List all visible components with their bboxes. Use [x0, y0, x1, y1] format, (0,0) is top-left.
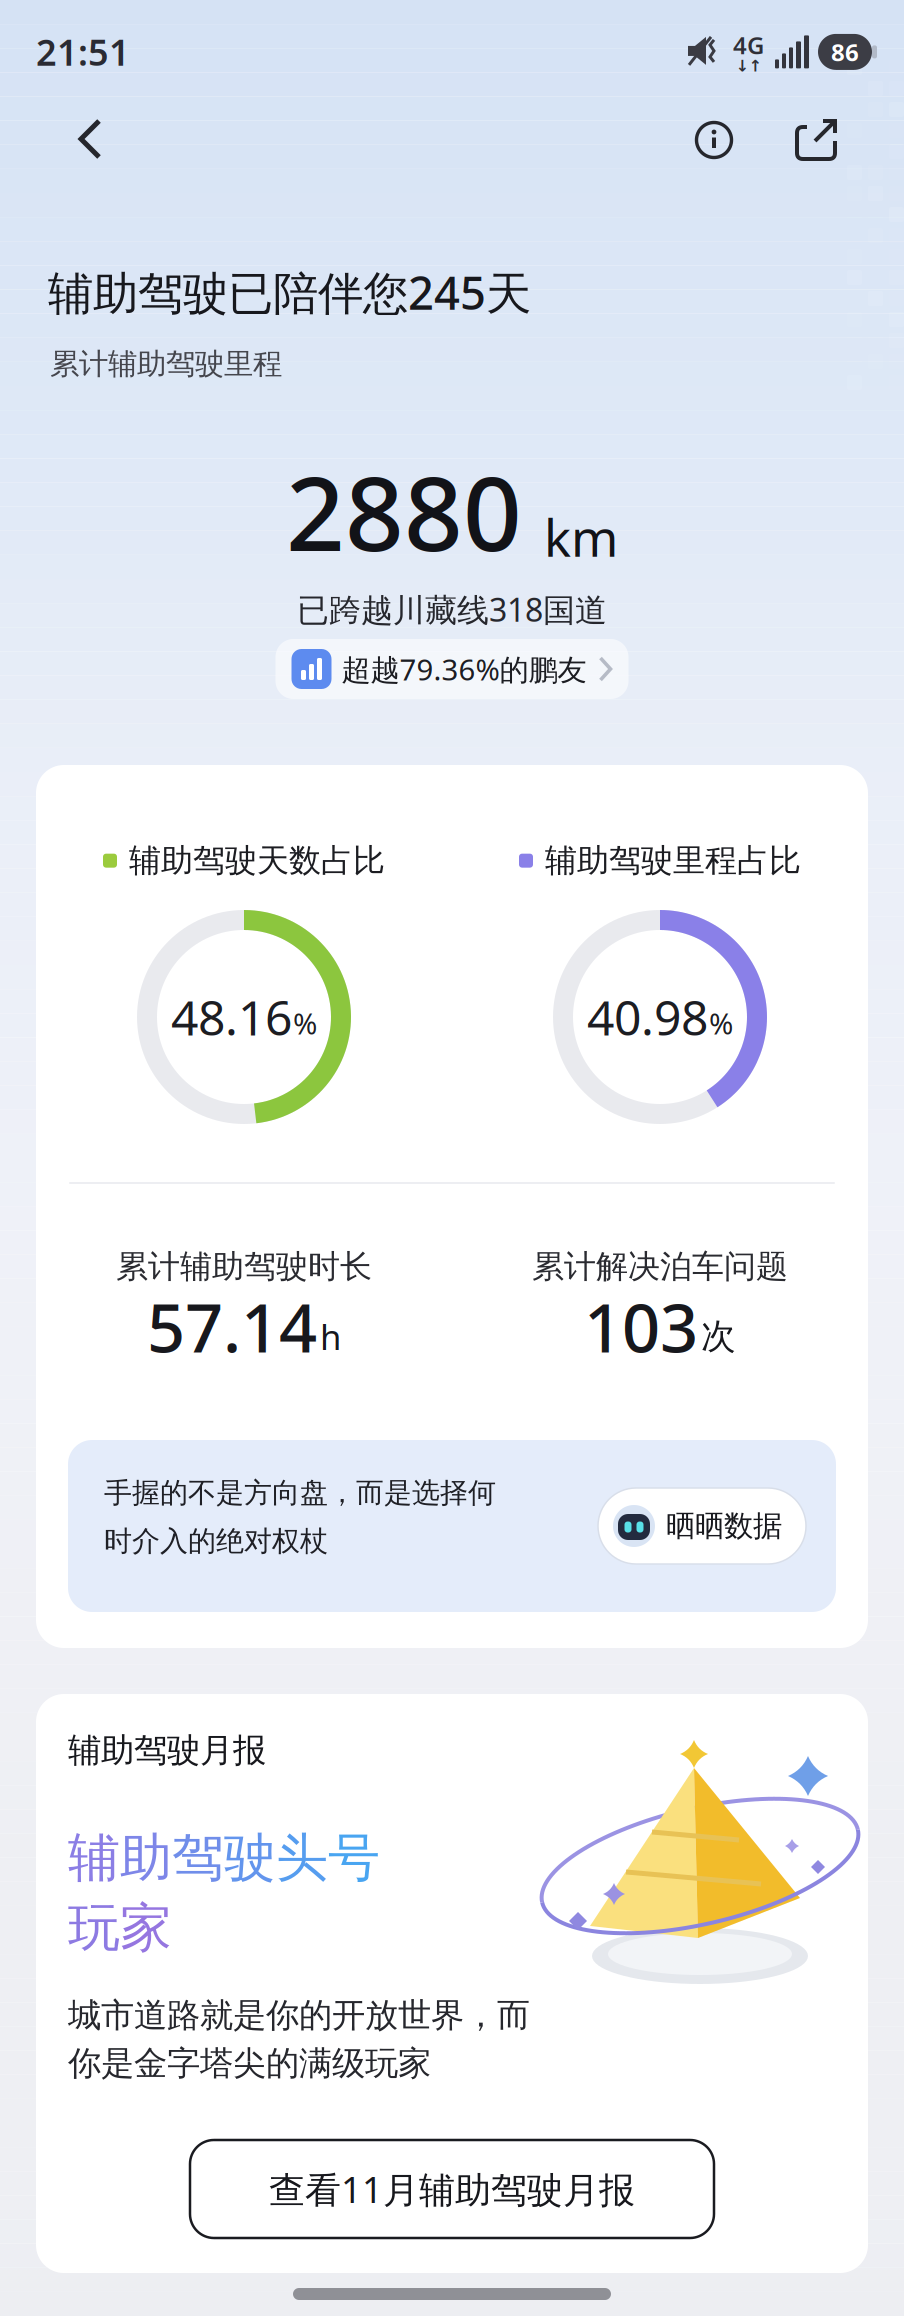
staticText: 86	[831, 36, 859, 68]
staticText: %	[709, 1003, 733, 1042]
staticText: 辅助驾驶月报	[68, 1730, 266, 1771]
staticText: 48.16	[171, 985, 292, 1049]
staticText: 你是金字塔尖的满级玩家	[68, 2043, 431, 2084]
button[interactable]: Share	[794, 118, 838, 162]
staticText: 4G	[733, 29, 764, 61]
staticText: 手握的不是方向盘，而是选择何	[104, 1476, 496, 1510]
button[interactable]: 查看11月辅助驾驶月报	[190, 2140, 714, 2238]
staticText: 超越79.36%的鹏友	[341, 649, 586, 688]
staticText: 时介入的绝对权杖	[104, 1524, 328, 1558]
staticText: 辅助驾驶天数占比	[129, 841, 385, 880]
staticText: 已跨越川藏线318国道	[297, 588, 607, 630]
staticText: 查看11月辅助驾驶月报	[269, 2165, 635, 2213]
staticText: 40.98	[587, 985, 708, 1049]
button[interactable]: 超越79.36%的鹏友	[275, 639, 628, 699]
staticText: 21:51	[36, 28, 130, 76]
staticText: 玩	[68, 1896, 120, 1960]
staticText: %	[293, 1003, 317, 1042]
staticText: 助	[120, 1826, 172, 1890]
staticText: 103	[584, 1282, 698, 1371]
button[interactable]: Back	[72, 118, 116, 162]
staticText: 号	[328, 1826, 380, 1890]
staticText: 晒晒数据	[666, 1508, 782, 1544]
staticText: 累计辅助驾驶时长	[116, 1247, 372, 1286]
staticText: 头	[276, 1826, 328, 1890]
staticText: 驶	[224, 1826, 276, 1890]
button[interactable]: Info	[692, 118, 736, 162]
staticText: 57.14	[147, 1282, 317, 1371]
staticText: 家	[120, 1896, 172, 1960]
staticText: 辅助驾驶里程占比	[545, 841, 801, 880]
staticText: 辅	[68, 1826, 120, 1890]
staticText: h	[320, 1314, 341, 1360]
staticText: km	[544, 503, 618, 571]
button[interactable]: 晒晒数据	[598, 1488, 806, 1564]
staticText: 累计辅助驾驶里程	[50, 346, 282, 382]
staticText: ↓↑	[735, 57, 761, 75]
staticText: 城市道路就是你的开放世界，而	[68, 1995, 530, 2036]
staticText: 辅助驾驶已陪伴您245天	[48, 262, 531, 322]
staticText: 次	[701, 1315, 736, 1358]
staticText: 累计解决泊车问题	[532, 1247, 788, 1286]
staticText: 驾	[172, 1826, 224, 1890]
staticText: 2880	[286, 443, 522, 579]
